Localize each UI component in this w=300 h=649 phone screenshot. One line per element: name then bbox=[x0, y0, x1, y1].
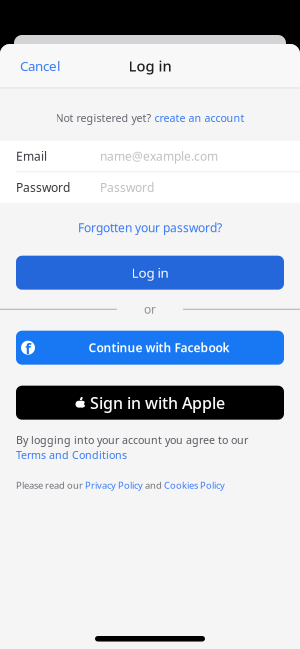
staticText: Log in bbox=[128, 56, 171, 75]
staticText: name@example.com bbox=[100, 148, 218, 164]
staticText: and bbox=[143, 479, 164, 491]
staticText: By logging into your account you agree t… bbox=[16, 433, 248, 447]
staticText: Not registered yet? bbox=[55, 111, 151, 125]
staticText: Please read our bbox=[16, 479, 85, 491]
staticText: Cookies Policy bbox=[164, 479, 225, 491]
staticText: Privacy Policy bbox=[85, 479, 143, 491]
button[interactable]: Cancel bbox=[0, 57, 60, 75]
staticText: Forgotten your password? bbox=[78, 220, 222, 236]
button[interactable]: Forgotten your password? bbox=[78, 221, 222, 235]
button[interactable]: Password bbox=[0, 172, 300, 203]
button[interactable]: Terms and Conditions bbox=[16, 448, 127, 462]
staticText: f bbox=[25, 338, 31, 358]
button[interactable]: Cookies Policy bbox=[164, 479, 225, 491]
button[interactable]: Privacy Policy bbox=[85, 479, 143, 491]
button[interactable]: Email bbox=[0, 141, 300, 171]
staticText: create an account bbox=[154, 111, 244, 125]
button[interactable]: Log in bbox=[0, 256, 300, 290]
staticText: Log in bbox=[131, 264, 168, 281]
staticText: Password bbox=[16, 179, 70, 195]
button[interactable]: Continue with Facebook bbox=[0, 331, 300, 365]
staticText: Sign in with Apple bbox=[90, 392, 225, 413]
staticText: Password bbox=[100, 179, 154, 195]
staticText: Continue with Facebook bbox=[88, 340, 229, 356]
staticText: Cancel bbox=[20, 57, 60, 75]
staticText: Terms and Conditions bbox=[16, 448, 127, 462]
button[interactable]: create an account bbox=[154, 111, 244, 125]
staticText: Email bbox=[16, 148, 47, 164]
button[interactable]: Sign in with Apple bbox=[0, 386, 300, 420]
staticText: or bbox=[144, 301, 156, 317]
